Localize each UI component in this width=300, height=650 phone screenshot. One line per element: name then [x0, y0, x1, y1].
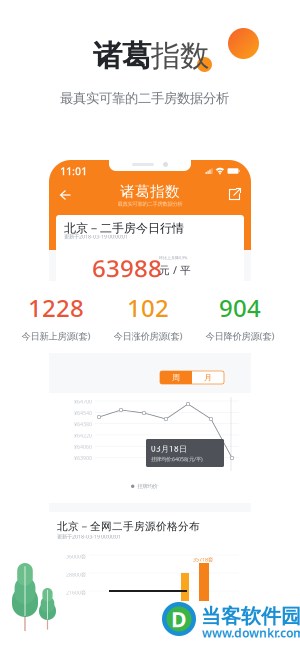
staticText: ¥63900	[74, 454, 92, 462]
staticText: 环比上月降0.9%	[159, 255, 187, 260]
button[interactable]: 周	[160, 371, 192, 384]
staticText: 11:01	[60, 164, 87, 178]
staticText: D	[171, 605, 187, 633]
staticText: 21600套	[66, 589, 86, 596]
staticText: 北京－全网二手房源价格分布	[57, 520, 200, 533]
staticText: ¥64380	[74, 421, 92, 428]
staticText: 北京－二手房今日行情	[64, 221, 184, 236]
staticText: 最真实可靠的二手房数据分析	[117, 201, 182, 207]
staticText: 月	[204, 373, 212, 382]
staticText: 904	[219, 292, 261, 324]
staticText: 诸葛	[93, 38, 151, 74]
staticText: 更新于2018-03-19 00:00:01	[64, 233, 128, 240]
staticText: www.downkr.com	[202, 625, 300, 641]
staticText: 元 / 平	[159, 263, 191, 277]
staticText: 当客软件园	[201, 604, 300, 629]
staticText: 1228	[28, 292, 84, 324]
staticText: 102	[127, 292, 169, 324]
staticText: 挂牌均价:64058(元/平)	[151, 455, 203, 463]
button[interactable]: 分享	[225, 185, 245, 205]
staticText: 诸葛指数	[120, 183, 180, 201]
staticText: ¥64060	[74, 443, 92, 450]
staticText: 28800套	[66, 571, 86, 578]
button[interactable]: 月	[192, 371, 224, 384]
button[interactable]: 返回	[55, 185, 75, 205]
staticText: 今日降价房源(套)	[205, 330, 274, 342]
staticText: 35718套	[193, 556, 213, 563]
staticText: ¥64220	[74, 432, 92, 439]
staticText: 更新于2018-03-19 00:00:01	[57, 533, 121, 540]
staticText: 今日新上房源(套)	[21, 330, 90, 342]
staticText: 指数	[151, 38, 209, 74]
staticText: 03月18日	[151, 443, 187, 454]
staticText: 周	[172, 373, 180, 382]
staticText: 63988	[92, 252, 162, 284]
staticText: ¥64540	[74, 409, 92, 416]
staticText: 最真实可靠的二手房数据分析	[60, 90, 229, 106]
staticText: ¥64700	[74, 398, 92, 405]
staticText: 今日涨价房源(套)	[113, 330, 182, 342]
staticText: 挂牌均价	[137, 483, 157, 490]
staticText: 36000套	[66, 553, 86, 560]
